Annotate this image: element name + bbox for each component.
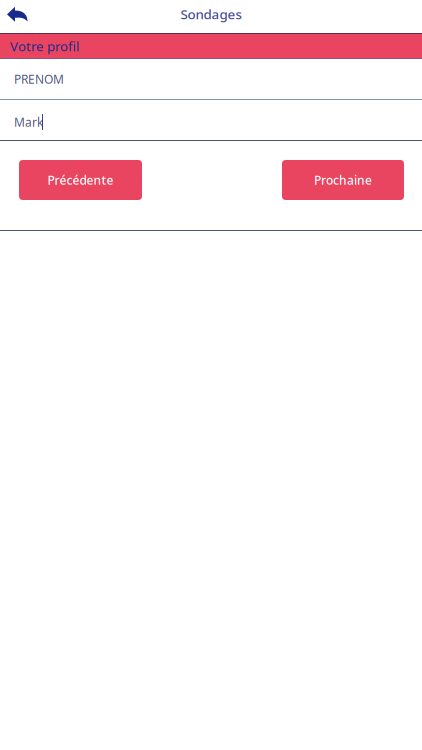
button[interactable]: Back (0, 0, 38, 33)
staticText: Précédente (47, 172, 113, 188)
button[interactable]: Précédente (19, 160, 142, 200)
button[interactable]: Prochaine (282, 160, 404, 200)
staticText: Sondages (180, 5, 241, 23)
staticText: Votre profil (10, 37, 79, 55)
staticText: PRENOM (14, 71, 64, 87)
staticText: Mark (14, 114, 43, 130)
staticText: Prochaine (314, 172, 372, 188)
